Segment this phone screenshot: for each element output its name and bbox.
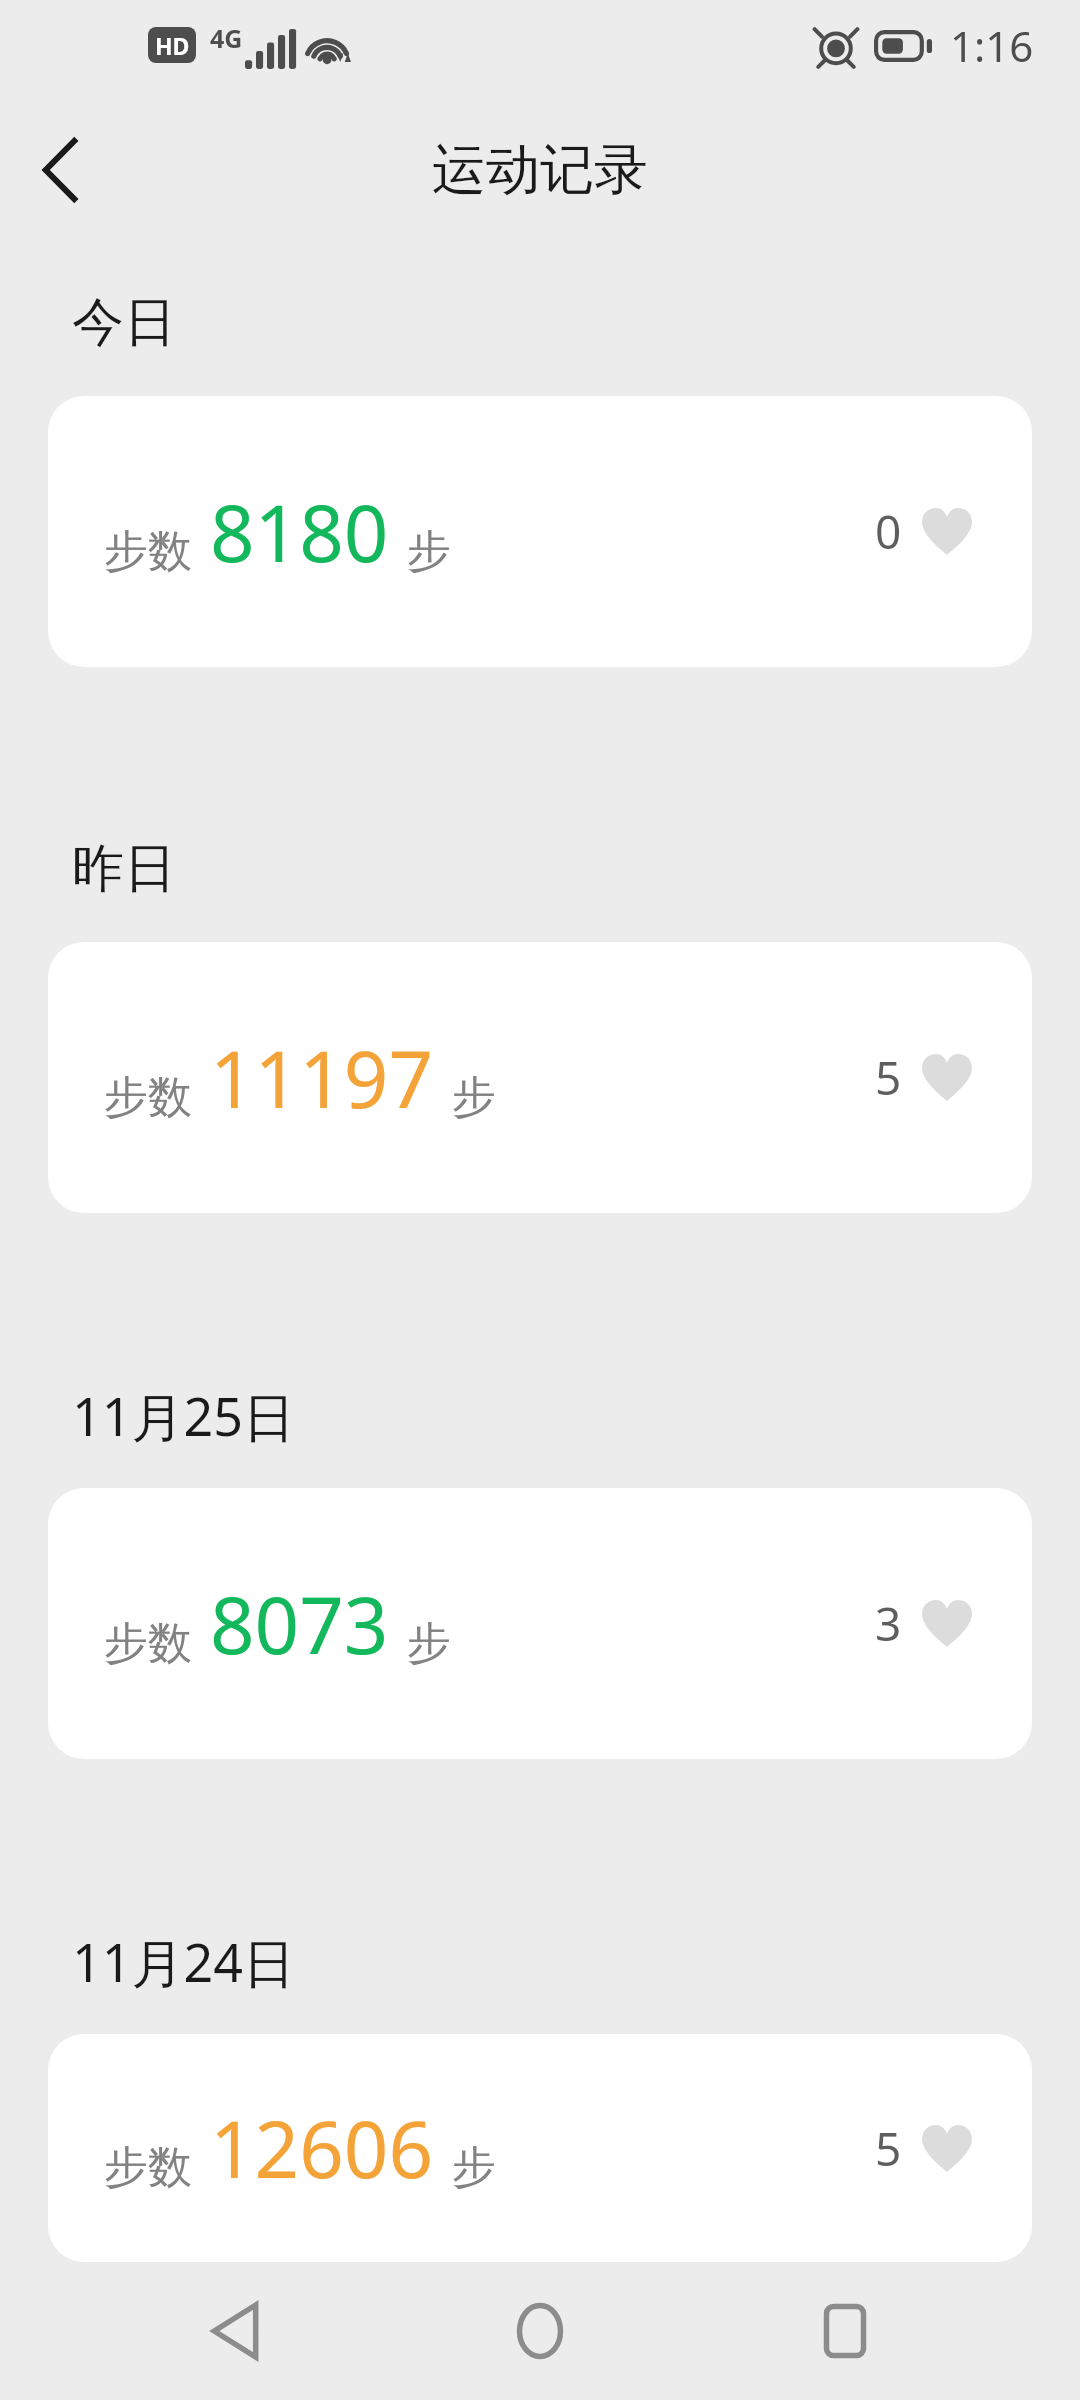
button[interactable]: Like <box>918 1049 976 1107</box>
staticText: 步 <box>407 524 451 579</box>
staticText: 步 <box>452 2140 496 2195</box>
button[interactable]: 步数 <box>48 1488 1032 1759</box>
staticText: 8073 <box>210 1571 389 1677</box>
staticText: 12606 <box>210 2095 434 2201</box>
staticText: 运动记录 <box>432 136 648 204</box>
staticText: 步数 <box>104 524 192 579</box>
button[interactable]: Like <box>918 503 976 561</box>
staticText: 11月25日 <box>72 1380 295 1451</box>
button[interactable]: Like <box>918 1595 976 1653</box>
staticText: 步数 <box>104 1070 192 1125</box>
button[interactable]: 步数 <box>48 942 1032 1213</box>
staticText: 今日 <box>72 290 176 356</box>
staticText: 步数 <box>104 1616 192 1671</box>
button[interactable]: 步数 <box>48 2034 1032 2262</box>
button[interactable]: 步数 <box>48 396 1032 667</box>
staticText: 5 <box>875 1046 902 1109</box>
staticText: 步 <box>407 1616 451 1671</box>
button[interactable]: Like <box>918 2120 976 2178</box>
staticText: 昨日 <box>72 836 176 902</box>
staticText: 步 <box>452 1070 496 1125</box>
staticText: 0 <box>875 500 902 563</box>
staticText: 步数 <box>104 2140 192 2195</box>
button[interactable]: Recent apps <box>790 2276 900 2386</box>
staticText: 11197 <box>210 1025 434 1131</box>
staticText: 8180 <box>210 479 389 585</box>
button[interactable]: Back <box>0 110 120 230</box>
staticText: 4G <box>210 21 243 55</box>
staticText: 3 <box>875 1592 902 1655</box>
button[interactable]: Back <box>180 2276 290 2386</box>
staticText: 5 <box>875 2117 902 2180</box>
staticText: HD <box>155 30 190 61</box>
staticText: 11月24日 <box>72 1926 295 1997</box>
button[interactable]: Home <box>485 2276 595 2386</box>
staticText: 1:16 <box>950 17 1034 74</box>
